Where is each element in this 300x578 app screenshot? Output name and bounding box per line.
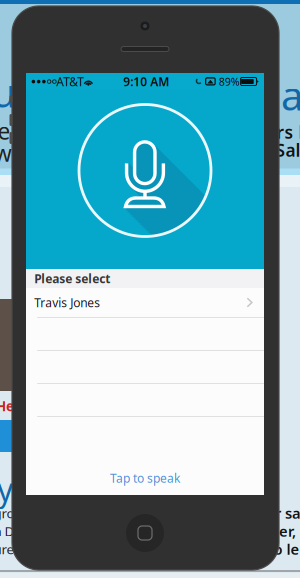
staticText: Tap to speak	[110, 470, 180, 486]
staticText: gro	[0, 504, 14, 522]
staticText: 89%	[219, 74, 240, 89]
staticText: a	[281, 68, 300, 121]
staticText: n D	[0, 522, 14, 540]
staticText: Sale	[275, 138, 300, 161]
staticText: y	[0, 468, 13, 510]
staticText: r sal	[275, 503, 300, 523]
staticText: u	[0, 65, 16, 118]
staticText: o lea	[273, 539, 300, 559]
staticText: w	[0, 138, 12, 168]
staticText: He	[0, 397, 14, 415]
staticText: Travis Jones	[34, 294, 100, 310]
staticText: AT&T	[56, 74, 84, 89]
staticText: e	[0, 116, 10, 146]
staticText: ter, C	[273, 521, 300, 541]
staticText: Please select	[34, 271, 110, 286]
button[interactable]: Travis Jones	[26, 288, 264, 317]
button[interactable]: Tap to speak	[95, 467, 195, 489]
staticText: ure	[0, 540, 14, 558]
staticText: rs h	[276, 120, 300, 143]
staticText: 9:10 AM	[123, 74, 169, 89]
